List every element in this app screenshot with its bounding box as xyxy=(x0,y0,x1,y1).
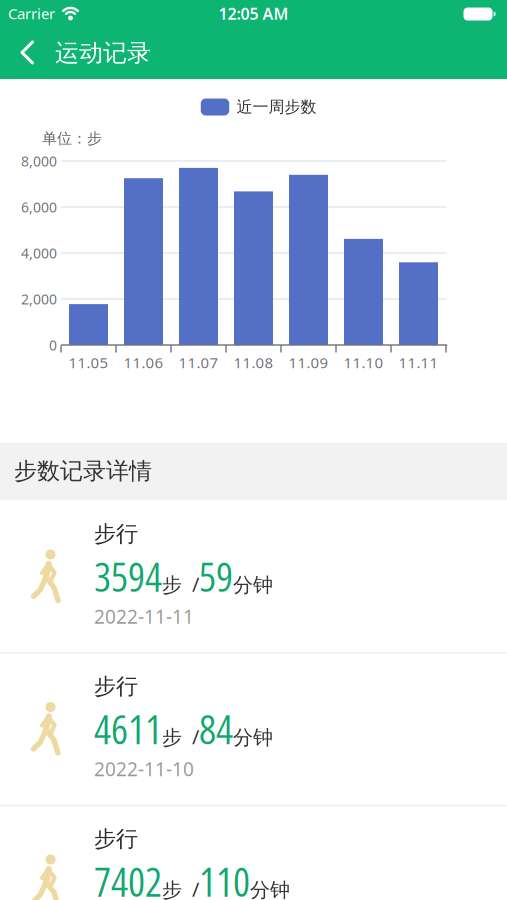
staticText: 11.09 xyxy=(288,352,328,373)
staticText: / xyxy=(182,723,199,750)
staticText: 4611 xyxy=(94,701,162,756)
staticText: 11.08 xyxy=(233,352,273,373)
staticText: 11.06 xyxy=(123,352,163,373)
staticText: 4,000 xyxy=(21,243,57,263)
staticText: 步数记录详情 xyxy=(14,456,152,485)
staticText: 84 xyxy=(199,701,233,756)
staticText: 步 xyxy=(162,572,182,598)
staticText: 8,000 xyxy=(21,151,57,171)
staticText: / xyxy=(182,875,199,900)
staticText: 步 xyxy=(162,725,182,750)
staticText: 步行 xyxy=(94,673,138,700)
staticText: 11.11 xyxy=(398,352,438,373)
staticText: 步行 xyxy=(94,825,138,853)
staticText: 59 xyxy=(199,548,233,604)
staticText: 2022-11-10 xyxy=(94,756,194,782)
button[interactable]: 步行 xyxy=(0,653,507,805)
staticText: 11.10 xyxy=(343,352,383,373)
staticText: 分钟 xyxy=(233,725,273,750)
staticText: 12:05 AM xyxy=(218,3,288,24)
staticText: Carrier xyxy=(8,3,55,24)
staticText: 运动记录 xyxy=(55,38,151,68)
staticText: 近一周步数 xyxy=(236,97,316,117)
staticText: 11.07 xyxy=(178,352,218,373)
staticText: 2022-11-11 xyxy=(94,604,194,629)
staticText: / xyxy=(182,570,199,597)
staticText: 3594 xyxy=(94,548,162,604)
staticText: 分钟 xyxy=(250,877,290,900)
staticText: 110 xyxy=(199,853,250,900)
staticText: 单位：步 xyxy=(42,129,102,148)
staticText: 0 xyxy=(49,335,57,355)
staticText: 分钟 xyxy=(233,572,273,598)
button[interactable]: 步行 xyxy=(0,805,507,900)
staticText: 步行 xyxy=(94,520,138,548)
button[interactable]: 步行 xyxy=(0,500,507,653)
staticText: 步 xyxy=(162,877,182,900)
staticText: 2,000 xyxy=(21,289,57,309)
staticText: 6,000 xyxy=(21,197,57,217)
button[interactable]: Back xyxy=(10,35,44,69)
staticText: 7402 xyxy=(94,853,162,900)
staticText: 11.05 xyxy=(68,352,108,373)
